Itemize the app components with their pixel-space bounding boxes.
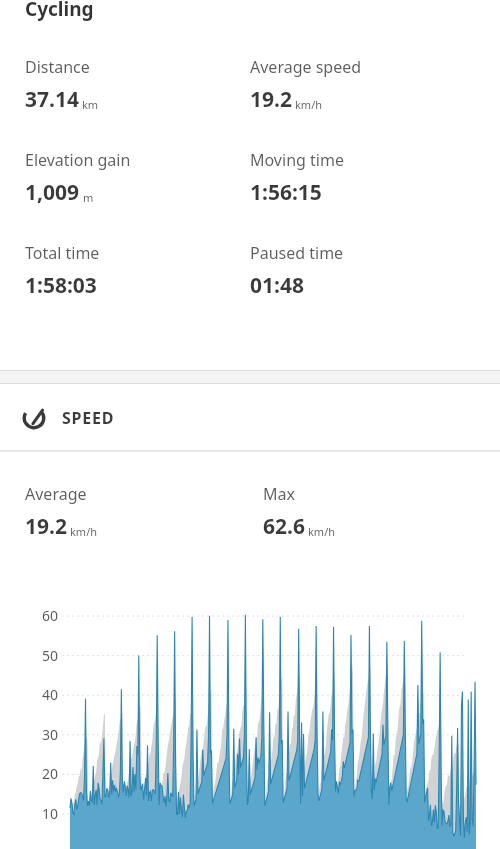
- staticText: 1,009: [25, 178, 80, 207]
- staticText: 62.6: [263, 512, 305, 541]
- staticText: 30: [14, 725, 58, 744]
- staticText: Moving time: [250, 149, 344, 171]
- staticText: 19.2: [25, 512, 67, 541]
- staticText: 37.14: [25, 85, 79, 114]
- staticText: 40: [14, 685, 58, 704]
- staticText: Elevation gain: [25, 149, 131, 171]
- button[interactable]: Cycling: [25, 0, 94, 22]
- button[interactable]: Speed: [0, 384, 500, 451]
- staticText: 60: [14, 606, 58, 625]
- staticText: SPEED: [62, 407, 115, 429]
- staticText: m: [83, 190, 94, 205]
- staticText: km: [82, 97, 99, 112]
- staticText: Cycling: [25, 0, 94, 22]
- staticText: Average speed: [250, 56, 362, 78]
- button[interactable]: Average speed: [250, 56, 362, 114]
- staticText: 20: [14, 764, 58, 783]
- staticText: Distance: [25, 56, 90, 78]
- staticText: 01:48: [250, 271, 304, 300]
- button[interactable]: Max: [263, 483, 336, 541]
- staticText: km/h: [308, 524, 336, 539]
- staticText: 1:56:15: [250, 178, 322, 207]
- staticText: 10: [14, 804, 58, 823]
- other: Speed: [21, 405, 47, 431]
- button[interactable]: Elevation gain: [25, 149, 131, 207]
- staticText: km/h: [70, 524, 98, 539]
- staticText: km/h: [295, 97, 323, 112]
- staticText: Total time: [25, 242, 100, 264]
- staticText: Average: [25, 483, 87, 505]
- staticText: 19.2: [250, 85, 292, 114]
- staticText: Max: [263, 483, 295, 505]
- button[interactable]: Average: [25, 483, 98, 541]
- staticText: 1:58:03: [25, 271, 97, 300]
- button[interactable]: Moving time: [250, 149, 344, 207]
- staticText: Paused time: [250, 242, 344, 264]
- button[interactable]: Paused time: [250, 242, 344, 300]
- button[interactable]: Distance: [25, 56, 99, 114]
- button[interactable]: Total time: [25, 242, 100, 300]
- staticText: 50: [14, 646, 58, 665]
